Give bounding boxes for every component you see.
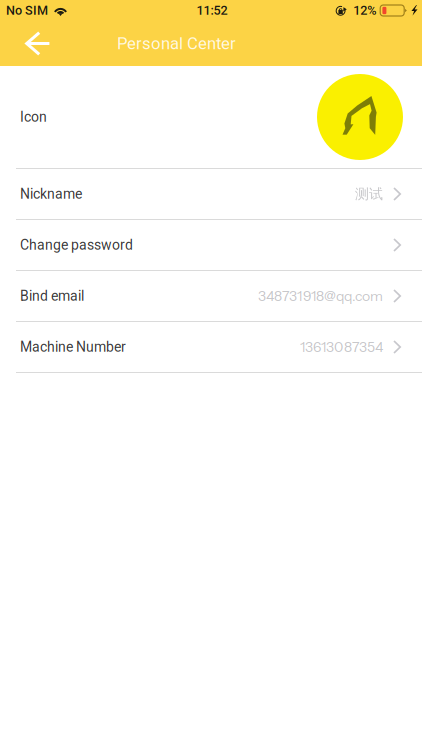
staticText: No SIM	[6, 3, 48, 18]
staticText: 13613087354	[300, 338, 383, 356]
button[interactable]: Back	[0, 31, 63, 56]
staticText: Personal Center	[117, 34, 236, 53]
button[interactable]: Machine Number	[0, 322, 422, 372]
staticText: Icon	[20, 109, 47, 125]
staticText: 11:52	[196, 3, 227, 18]
button[interactable]: Nickname	[0, 169, 422, 219]
staticText: Bind email	[20, 288, 84, 304]
staticText: 348731918@qq.com	[258, 287, 383, 305]
staticText: Nickname	[20, 186, 82, 202]
button[interactable]: Bind email	[0, 271, 422, 321]
staticText: Change password	[20, 237, 133, 253]
staticText: Machine Number	[20, 339, 126, 355]
button[interactable]: Change password	[0, 220, 422, 270]
staticText: 测试	[355, 185, 383, 203]
staticText: 12%	[353, 3, 376, 18]
button[interactable]: Icon	[0, 66, 422, 168]
